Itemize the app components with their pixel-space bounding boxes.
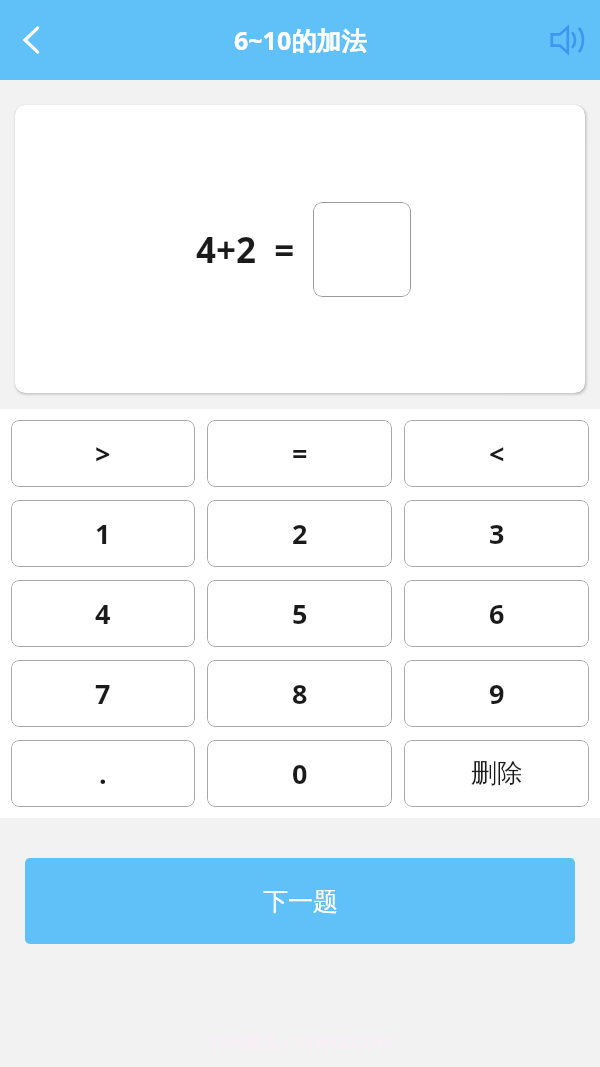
button[interactable]: . [11, 740, 195, 807]
button[interactable]: 2 [207, 500, 392, 567]
staticText: 3 [489, 515, 505, 552]
button[interactable]: Sound [534, 7, 600, 73]
button[interactable]: = [207, 420, 392, 487]
button[interactable]: 0 [207, 740, 392, 807]
button[interactable]: 7 [11, 660, 195, 727]
staticText: 下一题 [263, 886, 338, 917]
staticText: 8 [292, 675, 308, 712]
staticText: 6~10的加法 [234, 23, 367, 57]
staticText: 删除 [471, 757, 523, 790]
staticText: 11玩意儿 • 11WYX.COM [208, 1030, 392, 1053]
staticText: 1 [95, 515, 111, 552]
button[interactable]: 6 [404, 580, 589, 647]
button[interactable]: 4 [11, 580, 195, 647]
staticText: 4+2 = [196, 226, 295, 274]
staticText: 7 [95, 675, 111, 712]
staticText: 4 [95, 595, 111, 632]
button[interactable]: > [11, 420, 195, 487]
staticText: > [95, 435, 111, 472]
staticText: 0 [292, 755, 308, 792]
button[interactable]: 3 [404, 500, 589, 567]
staticText: < [489, 435, 505, 472]
staticText: 5 [292, 595, 308, 632]
button[interactable]: Answer [313, 202, 411, 297]
button[interactable]: 删除 [404, 740, 589, 807]
button[interactable]: 5 [207, 580, 392, 647]
button[interactable]: 8 [207, 660, 392, 727]
staticText: 6 [489, 595, 505, 632]
button[interactable]: 9 [404, 660, 589, 727]
button[interactable]: < [404, 420, 589, 487]
button[interactable]: Back [0, 8, 64, 72]
staticText: 9 [489, 675, 505, 712]
staticText: . [99, 755, 107, 792]
staticText: = [292, 435, 308, 472]
button[interactable]: 1 [11, 500, 195, 567]
staticText: 2 [292, 515, 308, 552]
button[interactable]: 下一题 [25, 858, 575, 944]
